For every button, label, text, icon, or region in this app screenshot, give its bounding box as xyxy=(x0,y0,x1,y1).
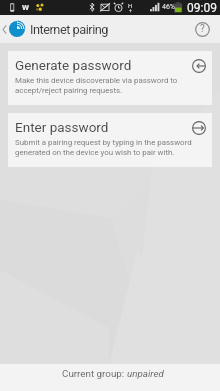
staticText: Current group: xyxy=(62,368,127,379)
staticText: Internet pairing xyxy=(30,22,109,37)
staticText: Submit a pairing request by typing in th… xyxy=(15,138,192,156)
staticText: unpaired xyxy=(127,368,164,379)
staticText: Make this device discoverable via passwo… xyxy=(15,76,192,94)
staticText: Generate password xyxy=(15,57,132,73)
staticText: 09:09 xyxy=(187,1,217,15)
button[interactable]: Enter password xyxy=(8,113,212,167)
staticText: ? xyxy=(200,23,205,35)
button[interactable]: Back xyxy=(0,21,25,37)
staticText: H xyxy=(128,2,133,9)
button[interactable]: Generate password xyxy=(8,51,212,105)
staticText: + xyxy=(129,7,132,13)
button[interactable]: Help xyxy=(188,15,216,43)
staticText: Enter password xyxy=(15,119,109,135)
staticText: W xyxy=(22,3,29,12)
staticText: 46% xyxy=(162,3,175,11)
